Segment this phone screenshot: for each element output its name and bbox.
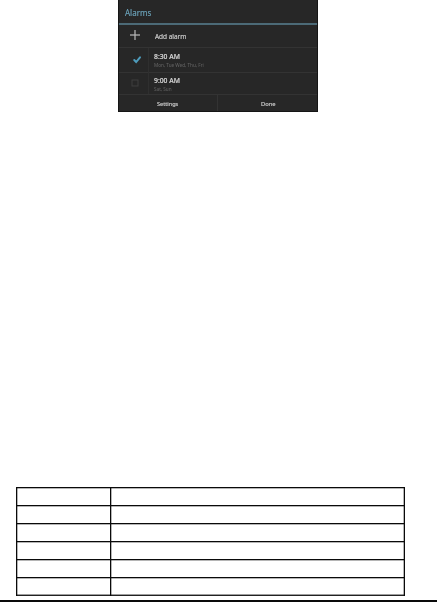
- staticText: Sat, Sun: [154, 86, 172, 92]
- staticText: Mon, Tue Wed, Thu, Fri: [154, 62, 204, 68]
- button[interactable]: Settings: [118, 95, 217, 112]
- staticText: Settings: [157, 100, 179, 108]
- staticText: Alarms: [125, 7, 152, 18]
- other: Add alarm: [130, 30, 140, 40]
- button[interactable]: Done: [218, 95, 318, 112]
- button[interactable]: Add alarm: [118, 25, 318, 47]
- staticText: 8:30 AM: [154, 52, 180, 61]
- button[interactable]: Alarm on: [131, 48, 143, 72]
- staticText: Done: [261, 100, 276, 108]
- button[interactable]: Alarm off: [129, 72, 141, 94]
- staticText: Add alarm: [155, 32, 187, 41]
- button[interactable]: Alarm on: [118, 48, 318, 72]
- staticText: 9:00 AM: [154, 76, 180, 85]
- button[interactable]: Alarm off: [118, 72, 318, 94]
